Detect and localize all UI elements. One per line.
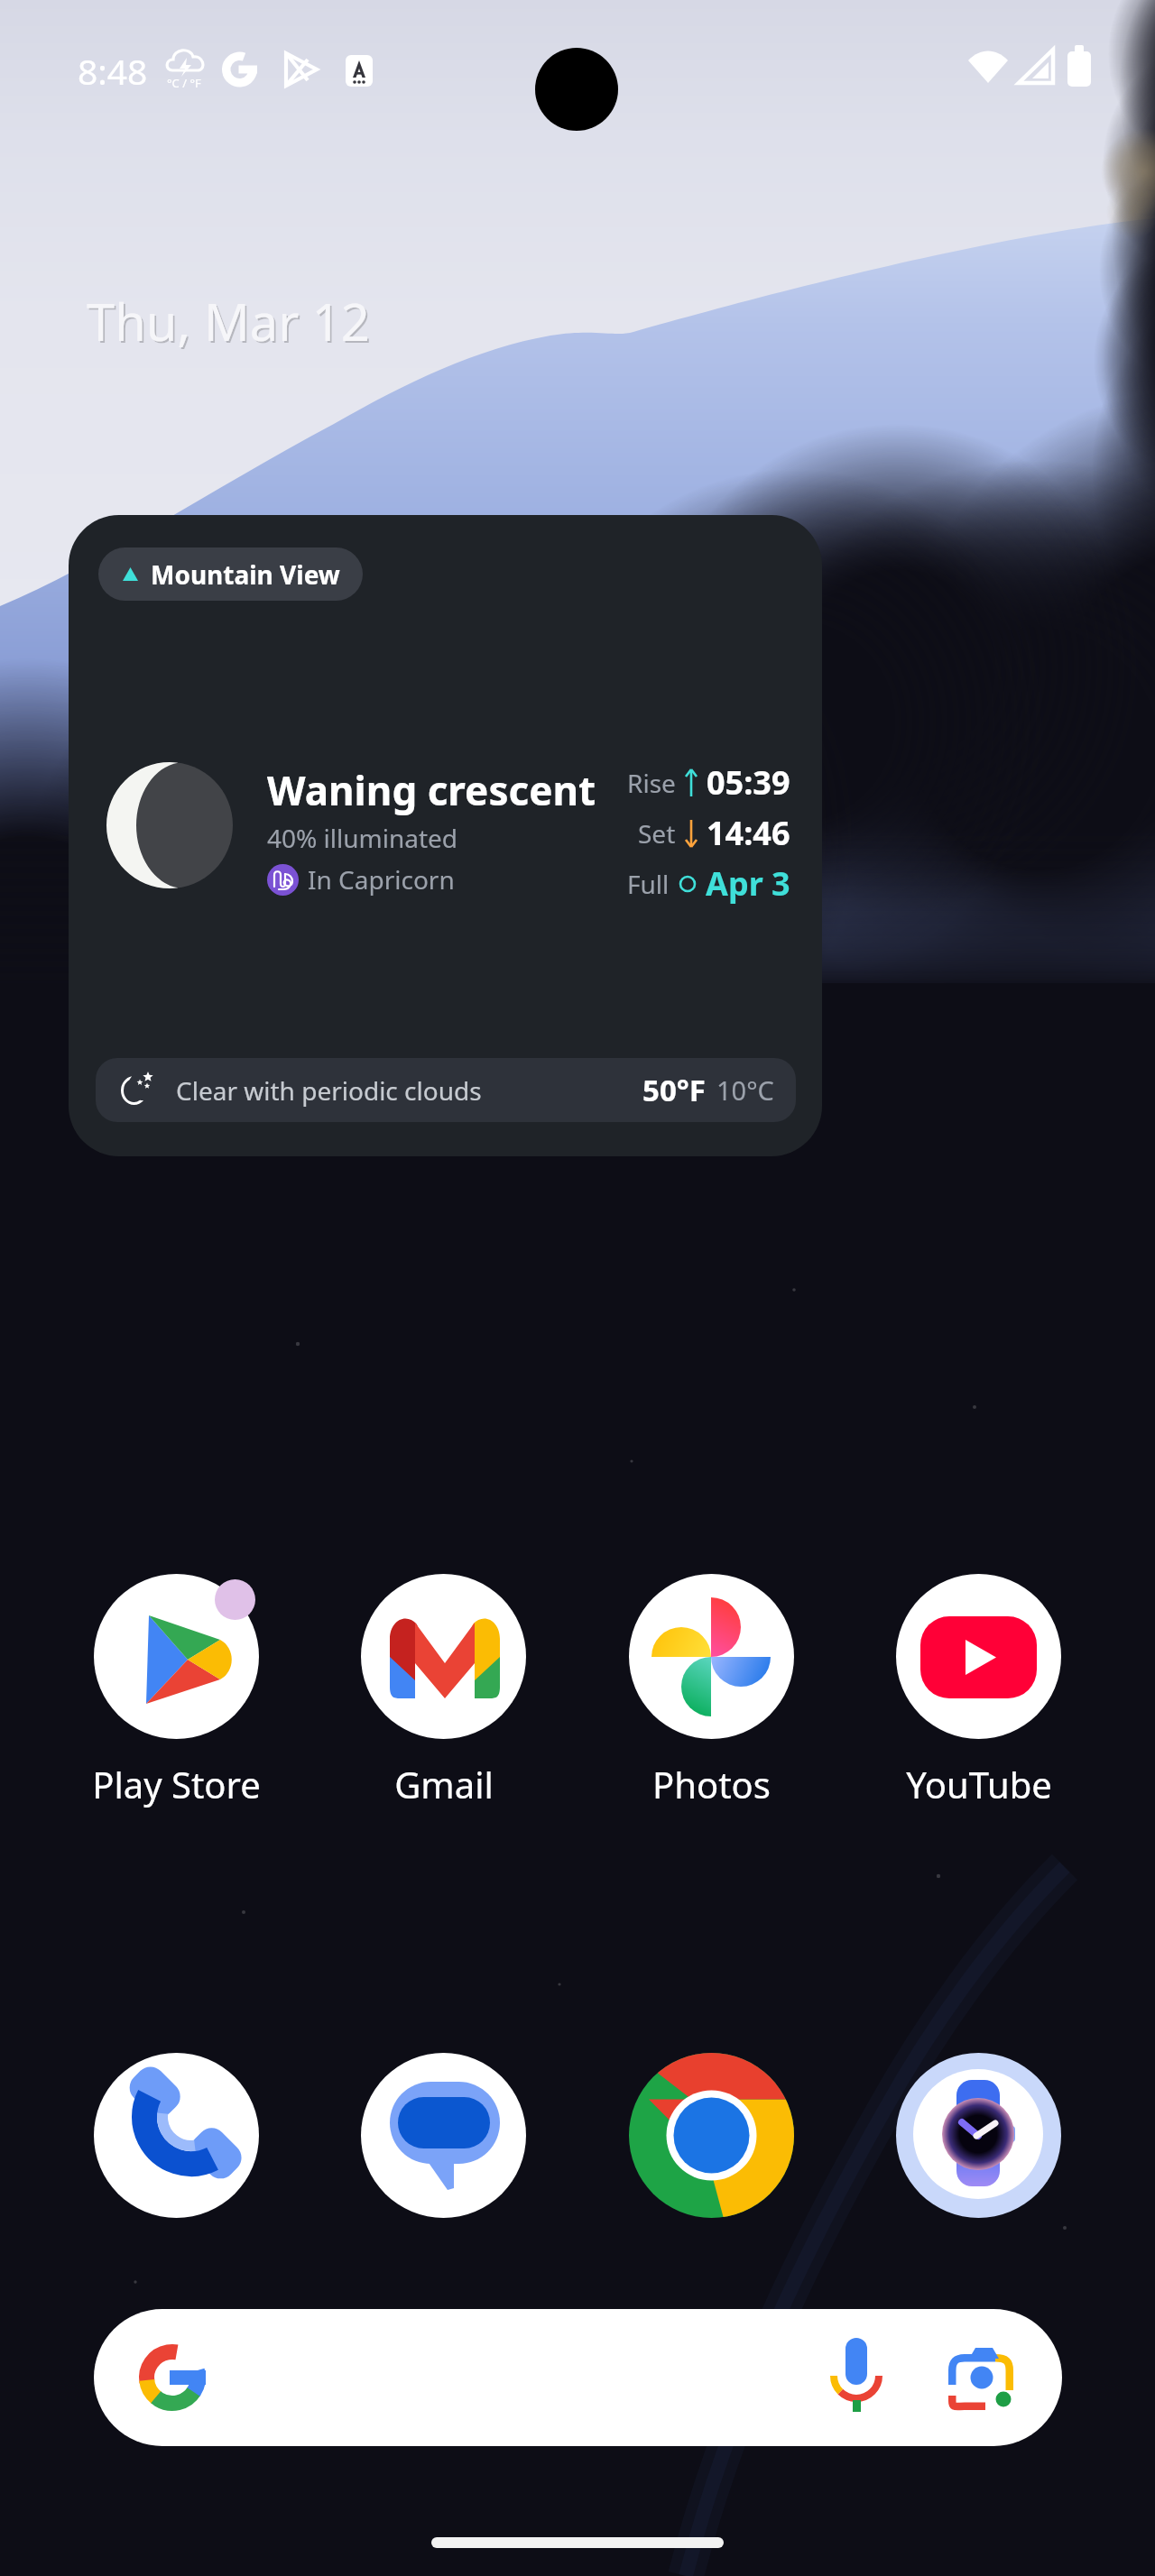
- button[interactable]: Mountain View: [98, 547, 363, 601]
- staticText: 14:46: [707, 811, 790, 855]
- staticText: °C / °F: [167, 75, 201, 91]
- button[interactable]: Chrome: [629, 2053, 794, 2218]
- staticText: Set: [638, 816, 676, 851]
- button[interactable]: Play Store: [67, 1574, 286, 1808]
- staticText: Mountain View: [151, 557, 340, 592]
- staticText: Thu, Mar 12: [88, 289, 372, 357]
- staticText: 8:48: [78, 47, 148, 95]
- staticText: Play Store: [92, 1760, 261, 1808]
- staticText: Photos: [652, 1760, 771, 1808]
- staticText: 05:39: [707, 760, 790, 805]
- staticText: Waning crescent: [267, 763, 596, 817]
- staticText: Full: [627, 867, 670, 901]
- button[interactable]: Mountain View: [69, 515, 822, 1156]
- staticText: Gmail: [394, 1760, 494, 1808]
- staticText: In Capricorn: [308, 862, 455, 897]
- button[interactable]: Photos: [602, 1574, 821, 1808]
- button[interactable]: YouTube: [869, 1574, 1088, 1808]
- button[interactable]: Google Lens: [948, 2345, 1013, 2410]
- staticText: Apr 3: [706, 861, 790, 906]
- button[interactable]: Phone: [94, 2053, 259, 2218]
- staticText: YouTube: [906, 1760, 1052, 1808]
- button[interactable]: Gmail: [334, 1574, 553, 1808]
- staticText: Clear with periodic clouds: [176, 1073, 482, 1108]
- staticText: Rise: [627, 766, 676, 800]
- button[interactable]: Clear with periodic clouds: [96, 1058, 796, 1122]
- staticText: 40% illuminated: [267, 821, 458, 855]
- button[interactable]: Voice search: [94, 2309, 1062, 2446]
- staticText: 10°C: [716, 1072, 774, 1108]
- staticText: 50°F: [642, 1070, 706, 1110]
- button[interactable]: Messages: [361, 2053, 526, 2218]
- staticText: Thu, Mar 12: [87, 287, 370, 355]
- button[interactable]: Watch: [896, 2053, 1061, 2218]
- button[interactable]: Voice search: [822, 2334, 891, 2403]
